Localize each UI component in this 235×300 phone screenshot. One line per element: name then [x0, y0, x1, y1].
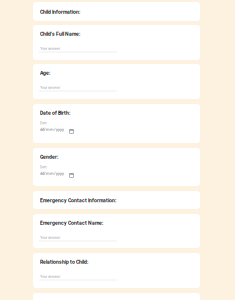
staticText: Your answer	[40, 235, 60, 240]
staticText: Emergency Contact Information:	[40, 197, 116, 203]
staticText: Age:	[40, 70, 50, 76]
button[interactable]: Child Information:	[33, 2, 200, 21]
staticText: Date	[40, 121, 47, 125]
staticText: Gender:	[40, 154, 58, 160]
staticText: Your answer	[40, 274, 60, 279]
button[interactable]: Gender:	[33, 148, 200, 186]
button[interactable]: Child's Full Name:	[33, 25, 200, 60]
staticText: Emergency Contact Name:	[40, 220, 103, 226]
staticText: Relationship to Child:	[40, 259, 88, 265]
staticText: dd/mm/yyyy	[40, 127, 64, 132]
staticText: dd/mm/yyyy	[40, 171, 64, 176]
staticText: Date	[40, 165, 47, 169]
button[interactable]: Age:	[33, 64, 200, 99]
button[interactable]: Emergency Contact Information:	[33, 191, 200, 209]
staticText: Child's Full Name:	[40, 31, 80, 37]
button[interactable]: Date of Birth:	[33, 104, 200, 143]
staticText: Your answer	[40, 46, 60, 51]
button[interactable]: Relationship to Child:	[33, 253, 200, 288]
staticText: Child Information:	[40, 9, 80, 15]
button[interactable]: Emergency Contact Name:	[33, 214, 200, 248]
staticText: Your answer	[40, 85, 60, 90]
staticText: Date of Birth:	[40, 110, 70, 116]
